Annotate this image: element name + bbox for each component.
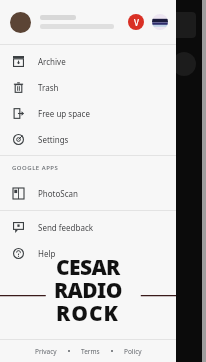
staticText: Send feedback (38, 222, 94, 233)
staticText: ROCK (56, 299, 120, 328)
staticText: Free up space (38, 108, 90, 119)
button[interactable]: Help (0, 240, 176, 266)
button[interactable]: Archive (0, 48, 176, 74)
staticText: PhotoScan (38, 188, 79, 199)
staticText: Terms (81, 347, 100, 356)
button[interactable]: Trash (0, 74, 176, 100)
button[interactable]: Free up space (0, 100, 176, 126)
staticText: RADIO (54, 276, 122, 305)
staticText: Settings (38, 134, 69, 145)
button[interactable]: Send feedback (0, 214, 176, 240)
staticText: CESAR (56, 253, 120, 282)
staticText: Trash (38, 82, 59, 93)
staticText: V (134, 17, 139, 28)
button[interactable]: PhotoScan (0, 180, 176, 206)
button[interactable]: Policy (122, 344, 144, 359)
staticText: GOOGLE APPS (12, 164, 59, 172)
staticText: Help (38, 248, 56, 259)
staticText: Policy (124, 347, 142, 356)
staticText: Archive (38, 56, 66, 67)
button[interactable]: Switch account (152, 14, 168, 30)
button[interactable]: Terms (79, 344, 102, 359)
button[interactable]: Privacy (33, 344, 59, 359)
button[interactable]: Account V (0, 0, 176, 44)
staticText: Privacy (35, 347, 57, 356)
button[interactable]: Settings (0, 126, 176, 152)
button[interactable]: Account V (128, 14, 144, 30)
